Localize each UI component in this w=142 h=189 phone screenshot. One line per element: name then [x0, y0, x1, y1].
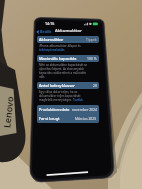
staticText: Beállít [40, 29, 52, 34]
staticText: 28 [93, 83, 97, 88]
staticText: akkumulátor teljes kapacitását [39, 94, 81, 98]
button[interactable]: Først brugt [37, 114, 99, 123]
staticText: Maximális kapacitás [39, 56, 77, 61]
button[interactable]: Akkumulátor [37, 36, 99, 43]
staticText: Akkumulátor [39, 37, 64, 42]
staticText: Produktionsdato [39, 107, 70, 112]
staticText: Méri az akkumulátor kapacitását az [39, 63, 87, 67]
staticText: iPhone-akkumulátor-állapot és [39, 44, 81, 48]
staticText: megfelelő mennyiséget. [39, 98, 73, 102]
staticText: Akkumulátor [55, 28, 82, 34]
staticText: november 2024 [72, 107, 97, 112]
staticText: Egy ciklus akkor teljes, ha az [39, 90, 78, 94]
staticText: kapacitás csökkentheti a működési [39, 71, 87, 75]
button[interactable]: Antal ladecyklusser [37, 82, 99, 89]
staticText: újkorihoz képest. Az alacsonyabb [39, 67, 84, 71]
staticText: 14:16 [45, 21, 55, 26]
button[interactable]: Produktionsdato [37, 105, 99, 114]
staticText: 100 % [87, 56, 97, 61]
staticText: töltésoptimalizálás. [39, 48, 66, 52]
staticText: Antal ladecyklusser [39, 83, 75, 88]
staticText: Først brugt [39, 116, 60, 121]
staticText: Lenovo [0, 95, 16, 129]
staticText: időt. [39, 75, 46, 79]
button[interactable]: Tovább [73, 98, 83, 102]
staticText: Tippek [86, 37, 97, 42]
button[interactable]: Maximális kapacitás [37, 55, 99, 62]
button[interactable]: Beállít [37, 29, 53, 34]
staticText: Március 2025 [75, 116, 97, 121]
